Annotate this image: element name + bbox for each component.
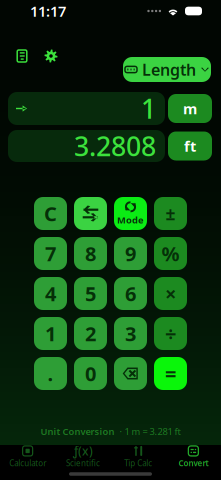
staticText: Convert (178, 458, 208, 468)
button[interactable]: Delete (114, 357, 147, 390)
button[interactable]: 3 (114, 317, 147, 350)
button[interactable]: ƒ(x) (55, 446, 110, 468)
staticText: 3 (125, 320, 136, 347)
staticText: 1 (45, 320, 56, 347)
button[interactable]: 6 (114, 277, 147, 310)
staticText: Length (142, 59, 196, 80)
button[interactable]: Mode (114, 197, 147, 230)
staticText: . (47, 360, 53, 387)
staticText: × (165, 280, 176, 307)
staticText: 8 (85, 240, 96, 267)
staticText: 9 (125, 240, 136, 267)
button[interactable]: 5 (74, 277, 107, 310)
button[interactable]: × (154, 277, 187, 310)
staticText: Scientific (66, 458, 100, 468)
staticText: Unit Conversion (40, 425, 114, 438)
staticText: 4 (45, 280, 56, 307)
button[interactable]: 9 (114, 237, 147, 270)
button[interactable]: History (13, 47, 31, 65)
staticText: Tip Calc (124, 458, 152, 468)
staticText: 6 (125, 280, 136, 307)
button[interactable]: Convert (166, 446, 221, 468)
staticText: · 1 m = 3.281 ft (119, 425, 180, 438)
staticText: Calculator (9, 458, 46, 468)
button[interactable]: m (168, 94, 212, 123)
button[interactable]: ÷ (154, 317, 187, 350)
staticText: 3.2808 (74, 128, 156, 164)
button[interactable]: . (34, 357, 67, 390)
button[interactable]: Settings (42, 47, 60, 65)
staticText: 1 (141, 91, 156, 126)
button[interactable]: 4 (34, 277, 67, 310)
staticText: ± (165, 202, 175, 225)
button[interactable]: Tip Calc (110, 446, 166, 468)
staticText: Mode (117, 214, 144, 226)
staticText: 2 (85, 320, 96, 347)
staticText: ft (184, 136, 196, 156)
staticText: 11:17 (30, 1, 66, 21)
button[interactable]: 7 (34, 237, 67, 270)
staticText: = (165, 360, 176, 387)
button[interactable]: C (34, 197, 67, 230)
button[interactable]: 8 (74, 237, 107, 270)
button[interactable]: ft (168, 131, 212, 160)
staticText: C (44, 200, 57, 227)
button[interactable]: 1 (34, 317, 67, 350)
button[interactable]: ± (154, 197, 187, 230)
staticText: m (183, 99, 197, 118)
staticText: 0 (85, 360, 96, 387)
button[interactable]: Calculator (0, 446, 55, 468)
button[interactable]: 2 (74, 317, 107, 350)
staticText: ƒ(x) (73, 443, 93, 459)
button[interactable]: Swap units (74, 197, 107, 230)
staticText: ÷ (165, 320, 176, 347)
button[interactable]: 0 (74, 357, 107, 390)
staticText: 5 (85, 280, 96, 307)
staticText: 7 (45, 240, 56, 267)
button[interactable]: % (154, 237, 187, 270)
button[interactable]: Length (123, 57, 211, 82)
button[interactable]: = (154, 357, 187, 390)
staticText: % (161, 240, 179, 267)
